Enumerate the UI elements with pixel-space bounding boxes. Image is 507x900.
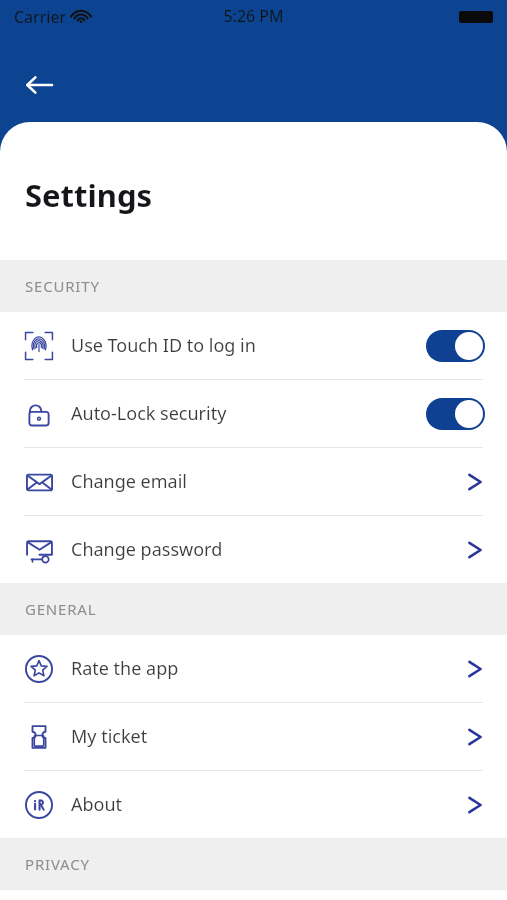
staticText: SECURITY [25, 276, 100, 296]
button[interactable]: My ticket [0, 703, 507, 770]
button[interactable]: Use Touch ID to log in [0, 312, 507, 379]
staticText: Change email [71, 469, 187, 494]
button[interactable]: Rate the app [0, 635, 507, 702]
staticText: PRIVACY [25, 854, 90, 874]
button[interactable]: Auto-Lock security [0, 380, 507, 447]
staticText: GENERAL [25, 599, 97, 619]
staticText: Auto-Lock security [71, 401, 227, 426]
button[interactable]: Toggle [426, 398, 485, 430]
button[interactable]: About [0, 771, 507, 838]
button[interactable]: Change password [0, 516, 507, 583]
button[interactable]: Toggle [426, 330, 485, 362]
staticText: Rate the app [71, 656, 179, 681]
staticText: Carrier [14, 6, 67, 28]
button[interactable]: Change email [0, 448, 507, 515]
staticText: Use Touch ID to log in [71, 333, 256, 358]
staticText: About [71, 792, 123, 817]
staticText: Settings [25, 174, 153, 216]
staticText: My ticket [71, 724, 148, 749]
staticText: 5:26 PM [223, 5, 284, 27]
staticText: Change password [71, 537, 223, 562]
button[interactable]: Back [16, 62, 62, 108]
